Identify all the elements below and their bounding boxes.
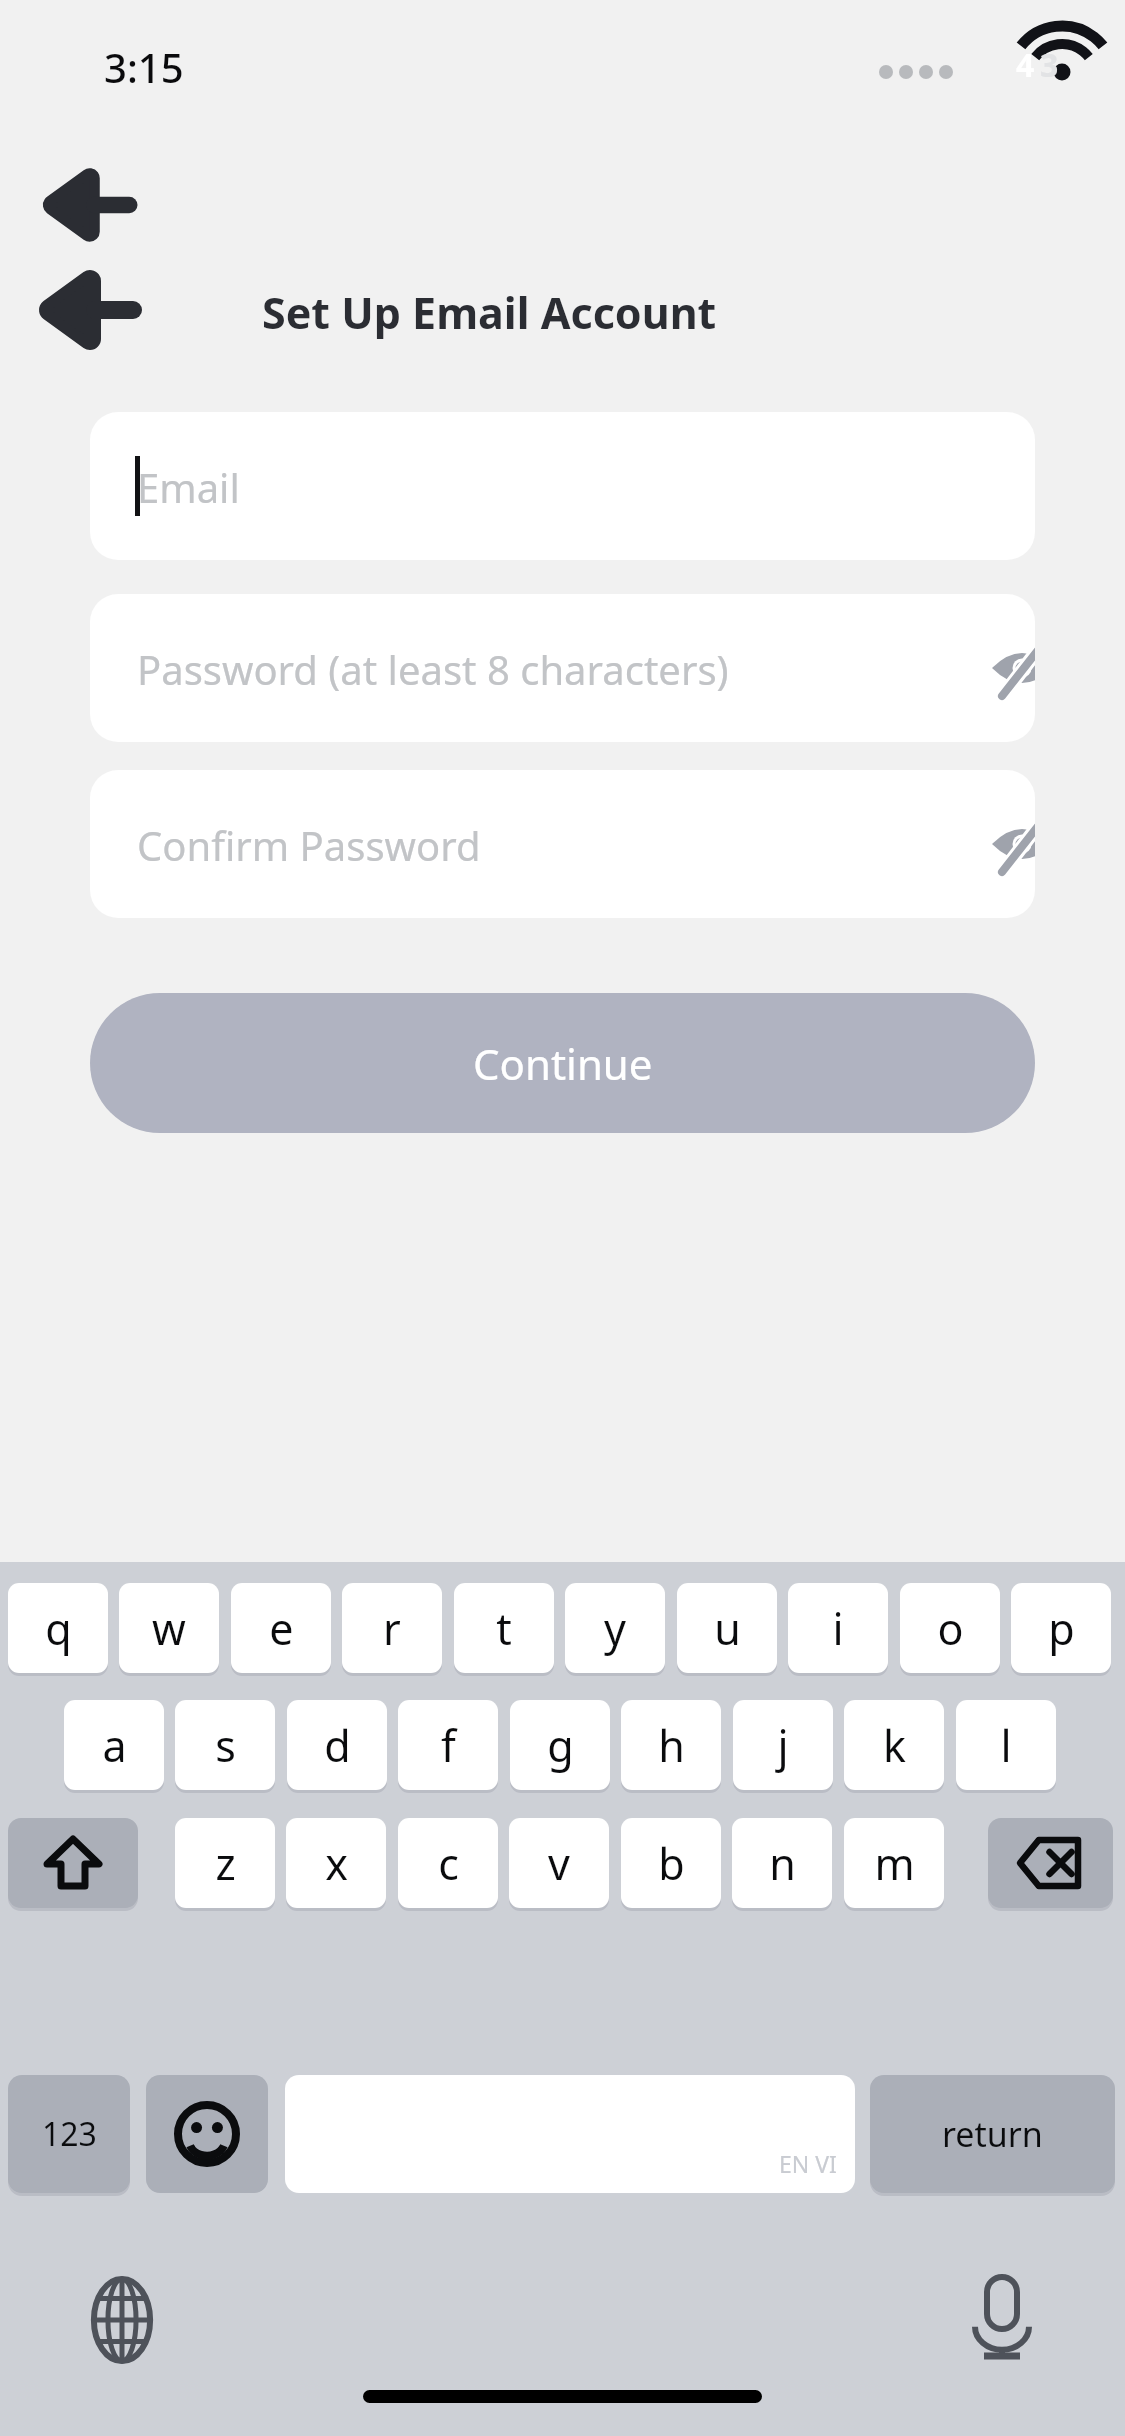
button[interactable]: Shift — [8, 1818, 138, 1908]
button[interactable]: Backspace — [988, 1818, 1113, 1908]
staticText: d — [324, 1716, 351, 1775]
staticText: p — [1048, 1599, 1075, 1658]
button[interactable]: t — [454, 1583, 554, 1673]
button[interactable]: b — [621, 1818, 721, 1908]
button[interactable]: v — [509, 1818, 609, 1908]
staticText: h — [658, 1716, 685, 1775]
staticText: g — [547, 1716, 574, 1775]
button[interactable]: n — [732, 1818, 832, 1908]
staticText: Password (at least 8 characters) — [137, 642, 729, 696]
staticText: o — [937, 1599, 964, 1658]
staticText: s — [215, 1716, 236, 1775]
button[interactable]: l — [956, 1700, 1056, 1790]
staticText: i — [832, 1599, 844, 1658]
staticText: 123 — [42, 2112, 97, 2156]
staticText: return — [942, 2111, 1043, 2157]
button[interactable]: k — [844, 1700, 944, 1790]
staticText: EN VI — [779, 2148, 837, 2179]
staticText: m — [874, 1834, 915, 1893]
button[interactable]: j — [733, 1700, 833, 1790]
staticText: e — [269, 1599, 294, 1658]
button[interactable]: p — [1011, 1583, 1111, 1673]
staticText: l — [1000, 1716, 1012, 1775]
staticText: b — [658, 1834, 685, 1893]
staticText: n — [769, 1834, 796, 1893]
button[interactable]: d — [287, 1700, 387, 1790]
staticText: a — [102, 1716, 127, 1775]
staticText: z — [215, 1834, 236, 1893]
button[interactable]: Emoji — [146, 2075, 268, 2193]
staticText: f — [441, 1716, 456, 1775]
button[interactable]: m — [844, 1818, 944, 1908]
staticText: v — [548, 1834, 570, 1893]
staticText: Set Up Email Account — [262, 283, 717, 342]
button[interactable]: Show password — [990, 638, 1035, 698]
staticText: r — [383, 1599, 401, 1658]
button[interactable]: EN VI — [285, 2075, 855, 2193]
button[interactable]: s — [175, 1700, 275, 1790]
staticText: Continue — [473, 1035, 653, 1092]
staticText: c — [438, 1834, 459, 1893]
staticText: k — [883, 1716, 906, 1775]
button[interactable]: Back — [42, 272, 172, 348]
button[interactable]: u — [677, 1583, 777, 1673]
staticText: q — [45, 1599, 72, 1658]
staticText: j — [777, 1716, 789, 1775]
staticText: 3 — [1040, 43, 1059, 87]
staticText: 3:15 — [104, 40, 184, 94]
staticText: 4 — [1016, 43, 1035, 87]
staticText: y — [604, 1599, 626, 1658]
button[interactable]: Show password — [990, 814, 1035, 874]
staticText: w — [152, 1599, 186, 1658]
button[interactable]: Back — [46, 170, 166, 240]
staticText: Email — [137, 460, 240, 514]
button[interactable]: z — [175, 1818, 275, 1908]
button[interactable]: w — [119, 1583, 219, 1673]
button[interactable]: Email — [90, 412, 1035, 560]
button[interactable]: a — [64, 1700, 164, 1790]
button[interactable]: h — [621, 1700, 721, 1790]
button[interactable]: return — [870, 2075, 1115, 2193]
button[interactable]: c — [398, 1818, 498, 1908]
staticText: Confirm Password — [137, 818, 481, 872]
staticText: t — [496, 1599, 512, 1658]
button[interactable]: Dictation — [952, 2270, 1052, 2370]
button[interactable]: g — [510, 1700, 610, 1790]
button[interactable]: Password (at least 8 characters) — [90, 594, 1035, 742]
button[interactable]: i — [788, 1583, 888, 1673]
button[interactable]: Confirm Password — [90, 770, 1035, 918]
button[interactable]: x — [286, 1818, 386, 1908]
button[interactable]: Change keyboard — [72, 2270, 172, 2370]
button[interactable]: e — [231, 1583, 331, 1673]
button[interactable]: r — [342, 1583, 442, 1673]
staticText: u — [714, 1599, 741, 1658]
staticText: x — [325, 1834, 348, 1893]
button[interactable]: f — [398, 1700, 498, 1790]
button[interactable]: 123 — [8, 2075, 130, 2193]
button[interactable]: Continue — [90, 993, 1035, 1133]
button[interactable]: y — [565, 1583, 665, 1673]
button[interactable]: o — [900, 1583, 1000, 1673]
button[interactable]: q — [8, 1583, 108, 1673]
